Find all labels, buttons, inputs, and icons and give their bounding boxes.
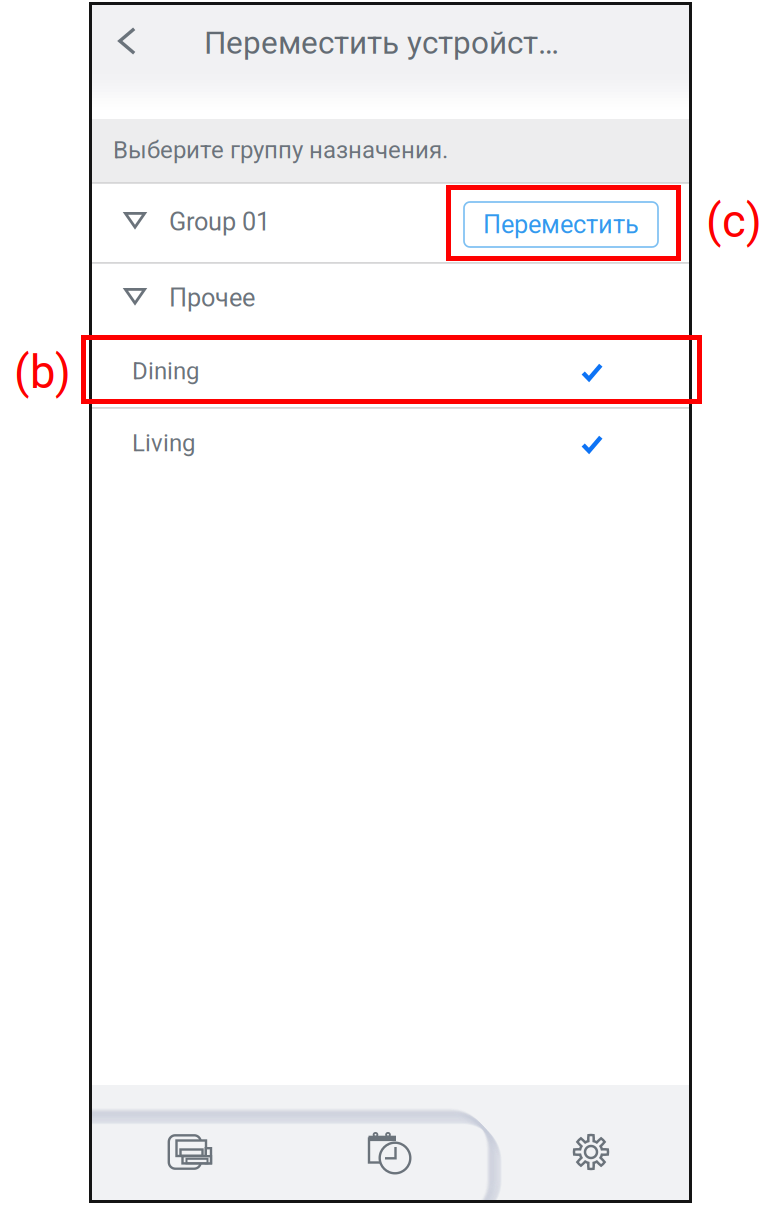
- button[interactable]: Group 01: [92, 183, 689, 262]
- button[interactable]: Dining: [92, 337, 689, 407]
- staticText: Dining: [132, 357, 199, 385]
- staticText: Living: [132, 429, 195, 457]
- button[interactable]: Прочее: [92, 262, 689, 337]
- staticText: Выберите группу назначения.: [113, 136, 448, 164]
- staticText: (b): [14, 346, 71, 399]
- button[interactable]: Back: [98, 13, 156, 69]
- button[interactable]: Переместить: [464, 202, 658, 247]
- staticText: Group 01: [169, 207, 270, 237]
- button[interactable]: Settings: [537, 1120, 645, 1184]
- button[interactable]: Devices: [136, 1121, 244, 1185]
- button[interactable]: Living: [92, 407, 689, 479]
- staticText: Переместить устройст…: [204, 25, 559, 61]
- staticText: Прочее: [169, 283, 255, 313]
- staticText: (c): [706, 195, 762, 248]
- staticText: Переместить: [483, 210, 639, 239]
- button[interactable]: Schedule: [336, 1122, 444, 1186]
